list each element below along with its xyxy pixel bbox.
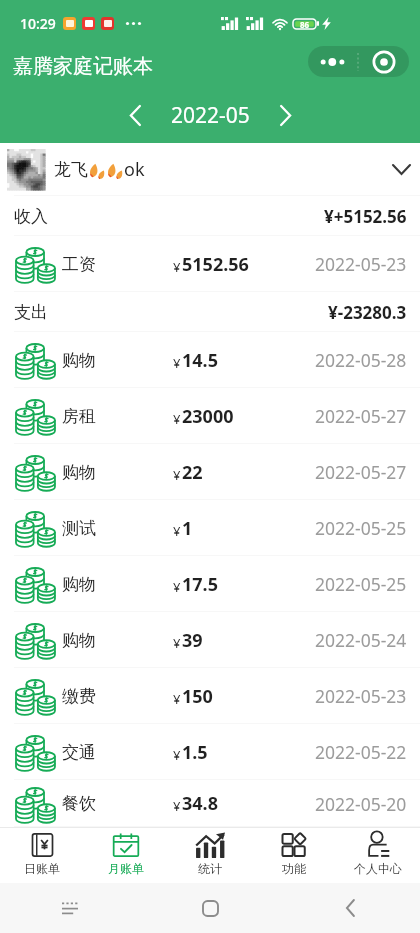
- button[interactable]: 工资: [0, 236, 420, 292]
- button[interactable]: Previous month: [112, 92, 158, 138]
- staticText: ¥: [173, 578, 181, 596]
- staticText: 2022-05-25: [315, 516, 407, 540]
- staticText: ¥: [173, 354, 181, 372]
- staticText: 购物: [62, 462, 96, 483]
- button[interactable]: 房租: [0, 388, 420, 444]
- staticText: 功能: [282, 861, 306, 876]
- button[interactable]: 月账单: [84, 828, 168, 883]
- staticText: 1.5: [182, 740, 208, 765]
- staticText: 日账单: [24, 861, 60, 876]
- staticText: ¥-23280.3: [328, 301, 407, 324]
- staticText: ¥: [173, 410, 181, 428]
- button[interactable]: 功能: [252, 828, 336, 883]
- staticText: 23000: [182, 404, 234, 429]
- staticText: 2022-05-28: [315, 348, 407, 372]
- staticText: 17.5: [182, 572, 218, 597]
- button[interactable]: Next month: [262, 92, 308, 138]
- staticText: ¥: [173, 634, 181, 652]
- staticText: 2022-05-25: [315, 572, 407, 596]
- staticText: 交通: [62, 742, 96, 763]
- staticText: 150: [182, 684, 213, 709]
- staticText: 支出: [14, 302, 48, 323]
- staticText: 2022-05-23: [315, 252, 407, 276]
- staticText: 购物: [62, 630, 96, 651]
- button[interactable]: 测试: [0, 500, 420, 556]
- staticText: 缴费: [62, 686, 96, 707]
- staticText: ¥+5152.56: [324, 205, 407, 228]
- button[interactable]: 个人中心: [336, 828, 420, 883]
- staticText: 个人中心: [354, 861, 402, 876]
- staticText: 测试: [62, 518, 96, 539]
- staticText: ok: [124, 157, 145, 182]
- staticText: 购物: [62, 350, 96, 371]
- staticText: ¥: [173, 690, 181, 708]
- staticText: ¥: [173, 797, 181, 815]
- button[interactable]: 餐饮: [0, 780, 420, 827]
- staticText: 2022-05-20: [315, 792, 407, 816]
- staticText: 购物: [62, 574, 96, 595]
- button[interactable]: Recents: [52, 890, 88, 926]
- staticText: 22: [182, 460, 203, 485]
- staticText: 1: [182, 516, 193, 541]
- staticText: ¥: [173, 258, 181, 276]
- staticText: 统计: [198, 861, 222, 876]
- staticText: 2022-05-22: [315, 740, 407, 764]
- staticText: 收入: [14, 206, 48, 227]
- button[interactable]: 购物: [0, 556, 420, 612]
- button[interactable]: 购物: [0, 444, 420, 500]
- staticText: 工资: [62, 254, 96, 275]
- button[interactable]: Home: [192, 890, 228, 926]
- staticText: 2022-05-27: [315, 404, 407, 428]
- staticText: 2022-05: [171, 101, 250, 130]
- staticText: 14.5: [182, 348, 218, 373]
- button[interactable]: 龙飞: [0, 143, 420, 196]
- staticText: 2022-05-27: [315, 460, 407, 484]
- button[interactable]: 缴费: [0, 668, 420, 724]
- staticText: 龙飞: [54, 159, 88, 180]
- staticText: ¥: [173, 466, 181, 484]
- staticText: 34.8: [182, 791, 218, 816]
- staticText: 86: [300, 19, 310, 29]
- button[interactable]: 统计: [168, 828, 252, 883]
- staticText: 39: [182, 628, 203, 653]
- staticText: 餐饮: [62, 793, 96, 814]
- staticText: 房租: [62, 406, 96, 427]
- staticText: 5152.56: [182, 252, 249, 277]
- button[interactable]: 日账单: [0, 828, 84, 883]
- button[interactable]: 购物: [0, 612, 420, 668]
- staticText: ¥: [173, 522, 181, 540]
- staticText: 2022-05-24: [315, 628, 407, 652]
- staticText: 月账单: [108, 861, 144, 876]
- staticText: 10:29: [20, 14, 56, 33]
- staticText: ¥: [173, 746, 181, 764]
- staticText: 嘉腾家庭记账本: [13, 54, 153, 79]
- button[interactable]: 交通: [0, 724, 420, 780]
- staticText: 2022-05-23: [315, 684, 407, 708]
- button[interactable]: 购物: [0, 332, 420, 388]
- button[interactable]: Mini window controls: [308, 46, 409, 77]
- button[interactable]: Back: [332, 890, 368, 926]
